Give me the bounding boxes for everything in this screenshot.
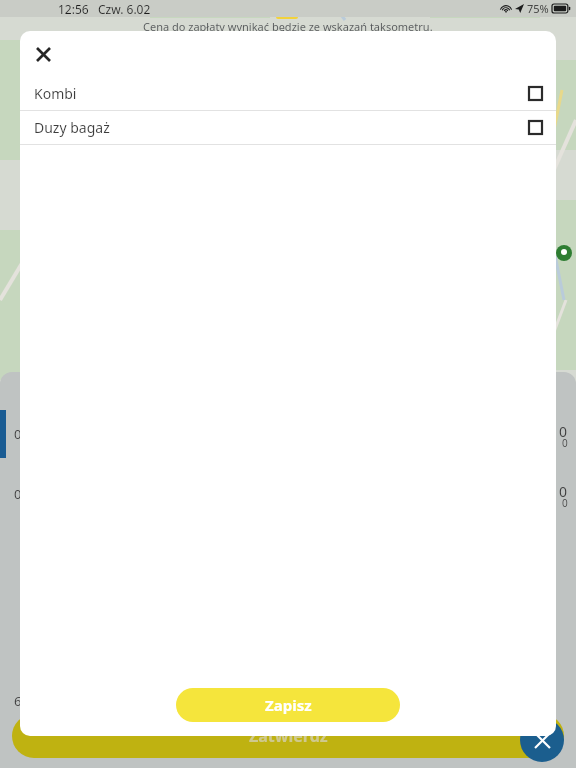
staticText: 0 [14, 425, 22, 443]
staticText: 0 [559, 422, 568, 441]
staticText: 75% [527, 1, 549, 16]
button[interactable]: Zamknij [20, 31, 66, 77]
staticText: Duzy bagaż [34, 118, 110, 137]
staticText: Cena do zapłaty wynikać będzie ze wskaza… [143, 19, 433, 34]
staticText: Zapisz [265, 695, 312, 715]
button[interactable]: Kombi [20, 77, 556, 111]
staticText: 0 [562, 436, 568, 450]
button[interactable]: Duzy bagaż [20, 111, 556, 145]
staticText: 0 [562, 496, 568, 510]
staticText: Kombi [34, 84, 77, 103]
button[interactable]: Zamknij [520, 718, 564, 762]
staticText: 0 [14, 485, 22, 503]
button[interactable]: Zatwierdź [12, 714, 564, 758]
staticText: 6 [14, 692, 22, 710]
staticText: 0 [559, 482, 568, 501]
staticText: 12:56 Czw. 6.02 [58, 1, 151, 17]
button[interactable]: Zapisz [176, 688, 400, 722]
staticText: Zatwierdź [249, 725, 328, 747]
